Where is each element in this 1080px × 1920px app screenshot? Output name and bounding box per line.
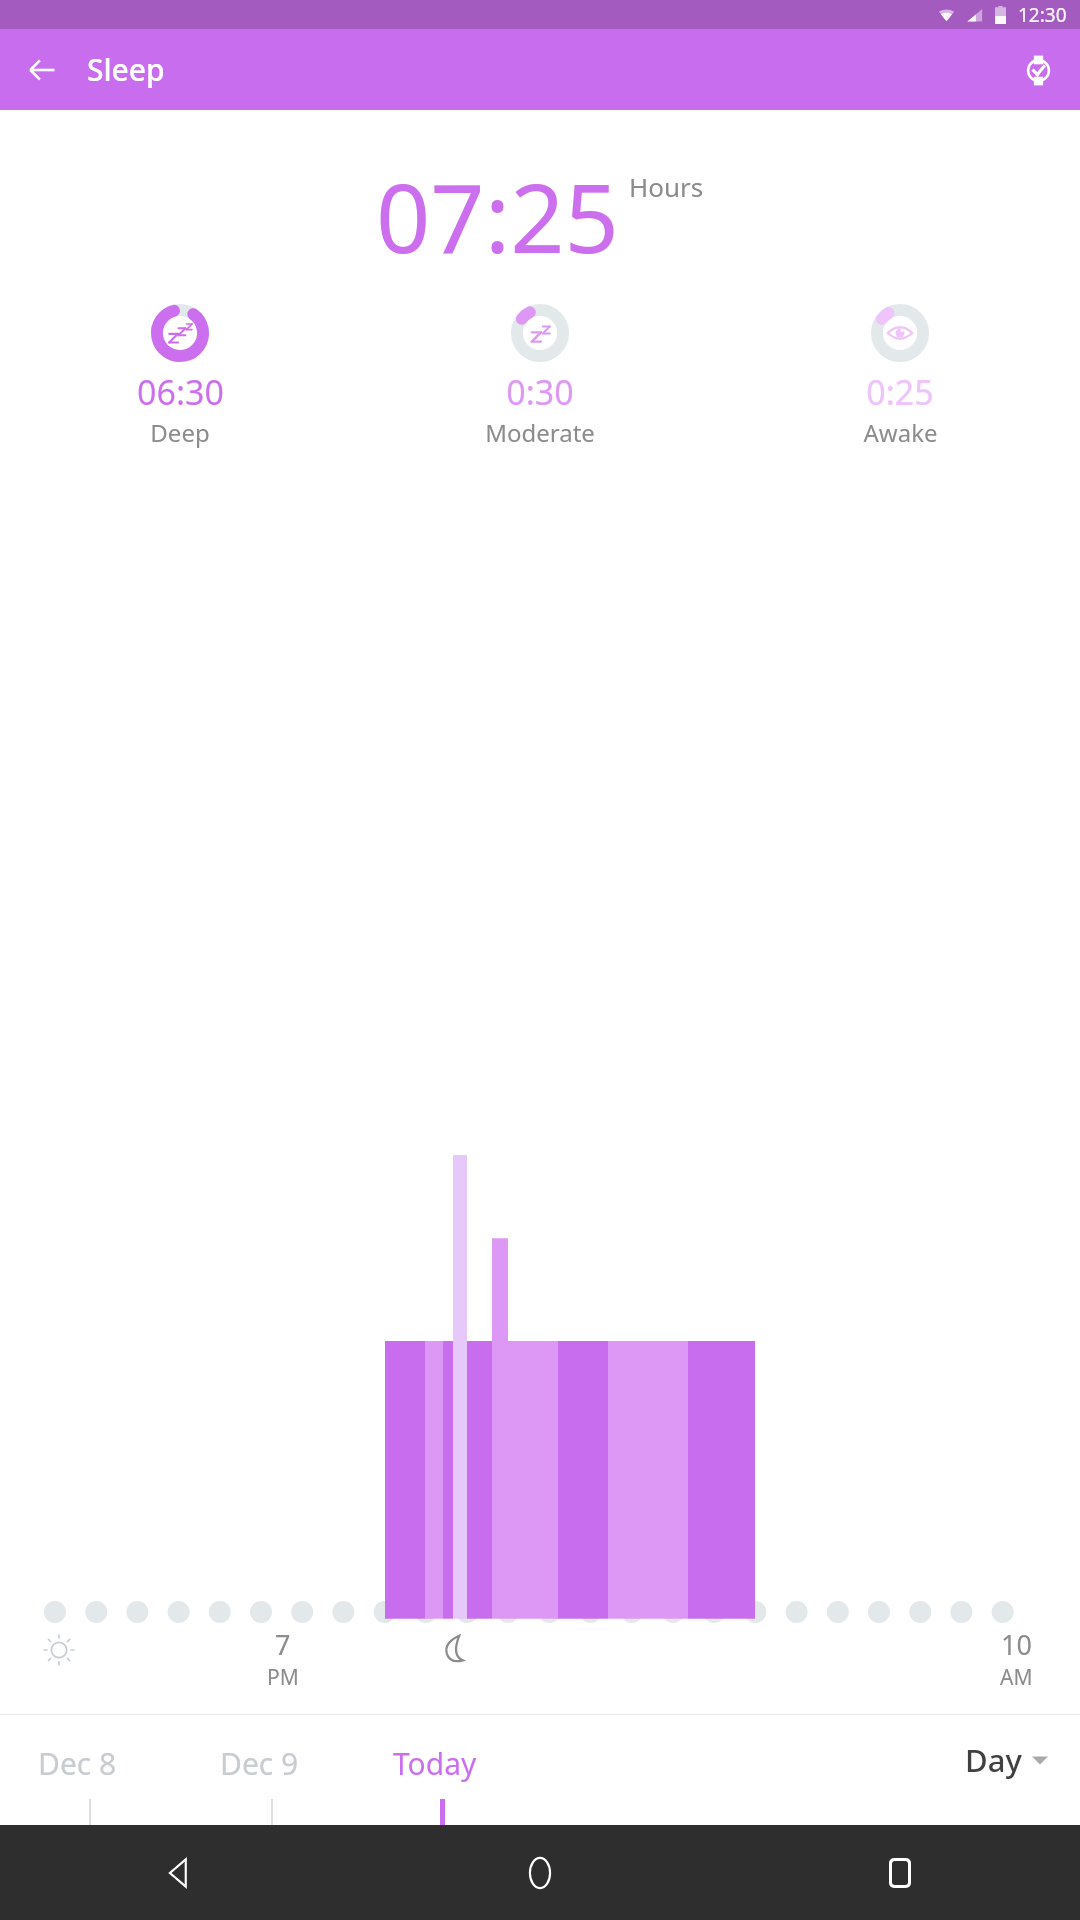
staticText: Moderate <box>485 416 595 449</box>
button[interactable]: Back <box>0 1825 360 1920</box>
button[interactable]: Dec 9 <box>220 1715 350 1825</box>
staticText: 0:30 <box>506 369 574 415</box>
staticText: Dec 8 <box>38 1743 117 1784</box>
button[interactable]: Recents <box>720 1825 1080 1920</box>
staticText: 7 <box>275 1626 291 1663</box>
button[interactable]: Day <box>965 1739 1048 1781</box>
staticText: Dec 9 <box>220 1743 299 1784</box>
staticText: Awake <box>863 416 938 449</box>
staticText: 07:25 <box>376 151 619 280</box>
staticText: Sleep <box>87 49 165 90</box>
button[interactable]: Back <box>14 42 70 98</box>
button[interactable] <box>0 1155 1080 1600</box>
button[interactable]: Today <box>393 1715 523 1825</box>
staticText: 06:30 <box>137 369 224 415</box>
button[interactable]: 0:30 <box>360 304 720 449</box>
button[interactable]: Home <box>360 1825 720 1920</box>
staticText: PM <box>267 1663 299 1692</box>
staticText: Today <box>393 1743 477 1784</box>
staticText: 12:30 <box>1018 2 1067 28</box>
button[interactable]: Dec 8 <box>38 1715 168 1825</box>
staticText: Deep <box>150 416 210 449</box>
staticText: Hours <box>629 169 704 204</box>
button[interactable]: Connected watch <box>1010 42 1066 98</box>
staticText: Day <box>965 1739 1022 1781</box>
button[interactable]: 06:30 <box>0 304 360 449</box>
staticText: 10 <box>1001 1626 1032 1663</box>
staticText: AM <box>1000 1663 1033 1692</box>
staticText: 0:25 <box>866 369 934 415</box>
button[interactable]: 0:25 <box>720 304 1080 449</box>
